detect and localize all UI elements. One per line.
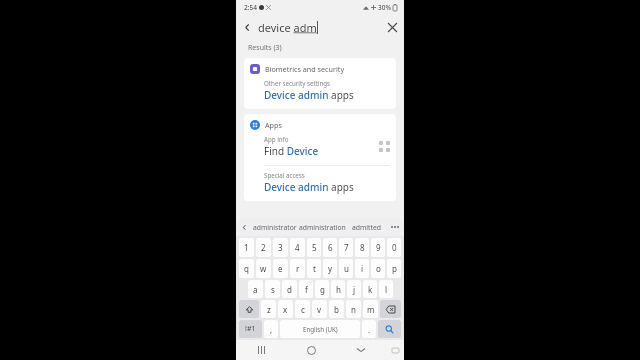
button[interactable]: v <box>312 300 327 318</box>
button[interactable]: p <box>387 259 401 278</box>
button[interactable]: 7 <box>339 238 353 257</box>
button[interactable]: r <box>290 259 305 278</box>
button[interactable]: Apps <box>244 114 396 135</box>
button[interactable]: English (UK) <box>280 320 360 338</box>
button[interactable]: o <box>371 259 385 278</box>
button[interactable]: t <box>307 259 321 278</box>
button[interactable]: App info <box>244 135 396 165</box>
staticText: Find Device <box>264 144 319 158</box>
button[interactable]: , <box>264 320 278 338</box>
button[interactable]: Biometrics and security <box>244 58 396 79</box>
button[interactable]: u <box>339 259 353 278</box>
button[interactable]: x <box>278 300 293 318</box>
button[interactable]: 4 <box>290 238 305 257</box>
button[interactable]: Shift <box>239 300 259 318</box>
button[interactable]: 0 <box>387 238 401 257</box>
staticText: 30% <box>378 3 391 12</box>
button[interactable]: k <box>363 280 377 298</box>
staticText: z <box>267 304 271 315</box>
staticText: t <box>313 263 316 274</box>
staticText: device adm <box>258 20 317 35</box>
staticText: 1 <box>244 242 249 253</box>
button[interactable]: 1 <box>239 238 254 257</box>
button[interactable]: Search <box>378 320 401 338</box>
button[interactable]: !#1 <box>239 320 262 338</box>
staticText: j <box>353 284 356 295</box>
staticText: 6 <box>328 242 333 253</box>
staticText: y <box>328 263 333 274</box>
button[interactable]: i <box>355 259 369 278</box>
button[interactable]: Recent apps <box>236 340 286 360</box>
button[interactable]: q <box>239 259 254 278</box>
staticText: 7 <box>344 242 349 253</box>
staticText: admitted <box>352 223 382 232</box>
staticText: Biometrics and security <box>265 64 345 74</box>
staticText: Other security settings <box>264 79 331 87</box>
button[interactable]: 8 <box>355 238 369 257</box>
staticText: g <box>320 284 325 295</box>
button[interactable]: 2 <box>256 238 271 257</box>
button[interactable]: m <box>363 300 378 318</box>
button[interactable]: j <box>347 280 361 298</box>
button[interactable]: 9 <box>371 238 385 257</box>
button[interactable]: f <box>299 280 313 298</box>
button[interactable]: 6 <box>323 238 337 257</box>
button[interactable]: n <box>346 300 361 318</box>
staticText: s <box>271 284 275 295</box>
button[interactable]: Backspace <box>380 300 401 318</box>
staticText: , <box>270 324 273 335</box>
button[interactable]: g <box>315 280 329 298</box>
staticText: Special access <box>264 171 305 179</box>
button[interactable]: administrator <box>252 218 298 236</box>
staticText: d <box>287 284 292 295</box>
button[interactable]: Change keyboard <box>386 340 404 360</box>
button[interactable]: 5 <box>307 238 321 257</box>
button[interactable]: e <box>273 259 288 278</box>
staticText: w <box>260 263 267 274</box>
staticText: e <box>278 263 283 274</box>
button[interactable]: Back <box>236 14 258 40</box>
button[interactable]: . <box>362 320 376 338</box>
button[interactable]: Hide keyboard <box>336 340 386 360</box>
staticText: 5 <box>312 242 317 253</box>
button[interactable]: Clear search <box>380 14 404 40</box>
button[interactable]: 3 <box>273 238 288 257</box>
staticText: administrator <box>253 223 297 232</box>
staticText: App info <box>264 135 289 143</box>
staticText: f <box>305 284 308 295</box>
staticText: b <box>334 304 339 315</box>
button[interactable]: a <box>248 280 263 298</box>
staticText: n <box>351 304 356 315</box>
staticText: Device admin apps <box>264 88 354 102</box>
button[interactable]: Other security settings <box>244 79 396 109</box>
button[interactable]: Special access <box>244 166 396 201</box>
button[interactable]: More suggestions <box>386 218 404 236</box>
staticText: . <box>368 324 371 335</box>
button[interactable]: s <box>265 280 280 298</box>
staticText: l <box>385 284 388 295</box>
staticText: k <box>368 284 373 295</box>
button[interactable]: Home <box>286 340 336 360</box>
button[interactable]: Previous suggestions <box>236 218 252 236</box>
button[interactable]: admitted <box>347 218 386 236</box>
staticText: Apps <box>265 120 282 130</box>
button[interactable]: w <box>256 259 271 278</box>
staticText: v <box>317 304 322 315</box>
staticText: 2 <box>261 242 266 253</box>
button[interactable]: d <box>282 280 297 298</box>
staticText: 4 <box>295 242 300 253</box>
staticText: x <box>283 304 288 315</box>
staticText: r <box>296 263 300 274</box>
button[interactable]: b <box>329 300 344 318</box>
staticText: 8 <box>360 242 365 253</box>
button[interactable]: h <box>331 280 345 298</box>
staticText: English (UK) <box>303 325 338 333</box>
button[interactable]: c <box>295 300 310 318</box>
button[interactable]: administration <box>298 218 347 236</box>
button[interactable]: z <box>261 300 276 318</box>
staticText: 2:54 <box>244 3 257 12</box>
button[interactable]: l <box>379 280 393 298</box>
staticText: 9 <box>376 242 381 253</box>
button[interactable]: y <box>323 259 337 278</box>
staticText: i <box>361 263 364 274</box>
